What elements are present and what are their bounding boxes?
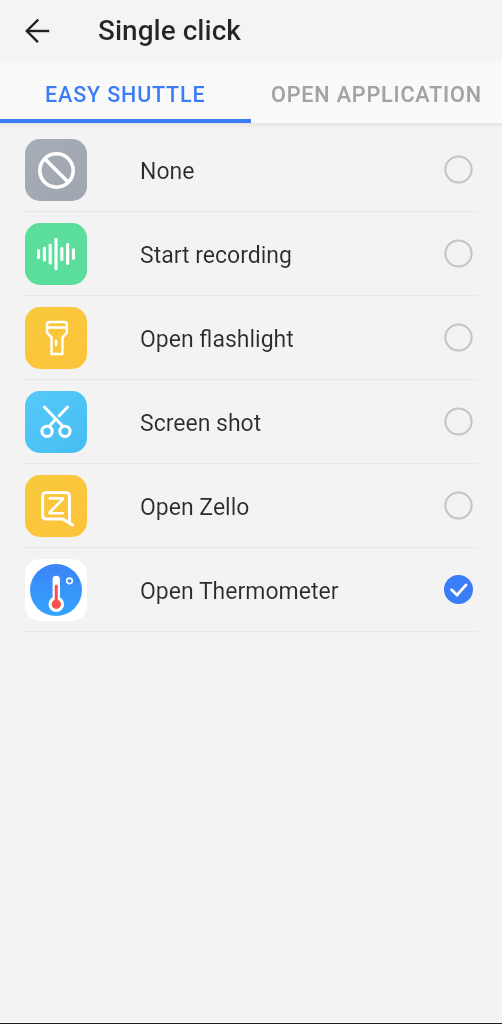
staticText: Open flashlight xyxy=(140,326,294,353)
button[interactable]: Back xyxy=(13,6,63,56)
staticText: OPEN APPLICATION xyxy=(271,82,482,107)
staticText: Open Zello xyxy=(140,494,250,521)
staticText: Single click xyxy=(98,14,241,47)
staticText: EASY SHUTTLE xyxy=(45,82,206,107)
button[interactable]: Start recording xyxy=(0,212,502,295)
button[interactable]: None xyxy=(0,128,502,211)
button[interactable]: EASY SHUTTLE xyxy=(0,61,251,123)
staticText: Start recording xyxy=(140,242,292,269)
button[interactable]: OPEN APPLICATION xyxy=(251,61,502,123)
button[interactable]: Open Thermometer xyxy=(0,548,502,631)
staticText: None xyxy=(140,158,195,185)
staticText: Screen shot xyxy=(140,410,262,437)
button[interactable]: Open Zello xyxy=(0,464,502,547)
button[interactable]: Open flashlight xyxy=(0,296,502,379)
button[interactable]: Screen shot xyxy=(0,380,502,463)
staticText: Open Thermometer xyxy=(140,578,339,605)
